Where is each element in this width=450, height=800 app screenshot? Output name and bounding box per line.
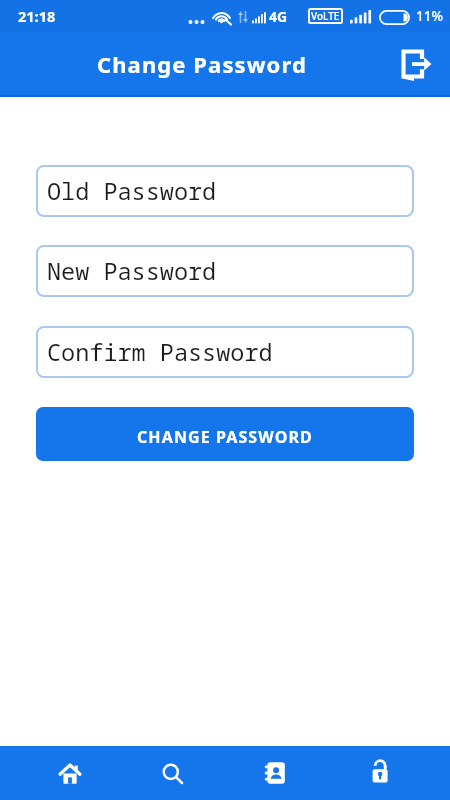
staticText: VoLTE bbox=[311, 9, 340, 23]
staticText: 4G bbox=[269, 7, 288, 26]
button[interactable] bbox=[18, 746, 121, 800]
staticText: Old Password bbox=[47, 175, 217, 207]
staticText: CHANGE PASSWORD bbox=[137, 426, 313, 448]
staticText: 21:18 bbox=[18, 6, 56, 26]
button[interactable]: Old Password bbox=[36, 165, 414, 217]
button[interactable] bbox=[224, 746, 328, 800]
staticText: 11% bbox=[416, 7, 443, 25]
button[interactable]: Confirm Password bbox=[36, 326, 414, 378]
button[interactable] bbox=[395, 43, 437, 85]
button[interactable] bbox=[328, 746, 432, 800]
staticText: Change Password bbox=[97, 49, 307, 79]
button[interactable] bbox=[121, 746, 224, 800]
staticText: New Password bbox=[47, 255, 217, 287]
staticText: Confirm Password bbox=[47, 336, 273, 368]
button[interactable]: CHANGE PASSWORD bbox=[36, 407, 414, 461]
button[interactable]: New Password bbox=[36, 245, 414, 297]
